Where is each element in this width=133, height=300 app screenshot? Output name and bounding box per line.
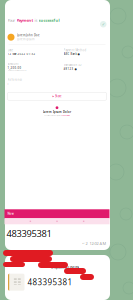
staticText: is [34,18,37,23]
staticText: Lorem ipsum [17,37,34,41]
button[interactable]: ➤ [4,92,106,100]
staticText: 2 12:02 AM [85,241,106,246]
staticText: one thousand two hundred [7,70,26,71]
staticText: Lorem ipsum dolor sit, amet [44,115,61,116]
staticText: Payment [16,18,33,23]
staticText: New [7,212,13,215]
staticText: Date [7,48,13,52]
staticText: ABC Bank ● [63,52,79,56]
staticText: Your [7,18,15,23]
staticText: Share [55,94,62,98]
staticText: successful [38,18,59,23]
staticText: 483395381 [27,277,72,287]
staticText: Payment Method [63,48,86,52]
staticText: consectetur [61,115,70,116]
staticText: Transaction ID [63,63,81,67]
staticText: #8123 ● [63,67,76,71]
staticText: ☷ [13,277,21,287]
staticText: ↩ [82,242,84,245]
staticText: Amount [7,62,18,66]
staticText: 12 Mar 2022 01:32 [7,52,35,56]
staticText: ➤ [52,95,54,98]
staticText: Lorem John Doe [17,33,40,37]
staticText: Deposit ADMIN [51,264,79,270]
staticText: Reference [7,78,22,81]
staticText: ✓ [102,22,105,26]
staticText: Lorem Ipsum Dolor [43,110,71,114]
staticText: 483395381 [6,227,51,240]
staticText: 1,200.00 [7,66,21,70]
